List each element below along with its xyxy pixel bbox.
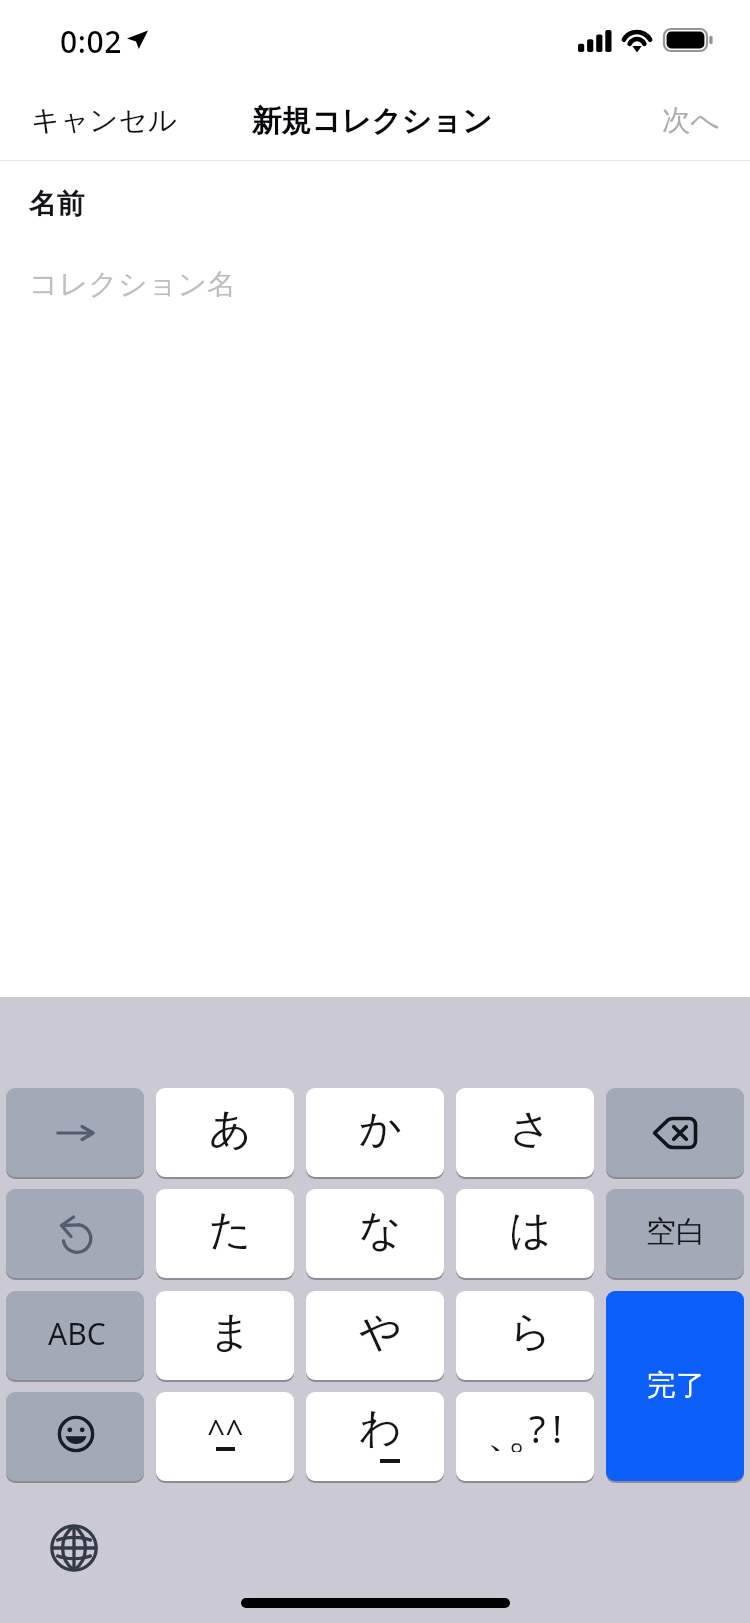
- button[interactable]: 完了: [606, 1291, 744, 1481]
- button[interactable]: か: [306, 1088, 444, 1177]
- button[interactable]: な: [306, 1189, 444, 1278]
- button[interactable]: た: [156, 1189, 294, 1278]
- staticText: コレクション名: [29, 266, 237, 303]
- staticText: ABC: [48, 1313, 106, 1354]
- button[interactable]: わ: [306, 1392, 444, 1481]
- button[interactable]: Next: [6, 1088, 144, 1177]
- staticText: ま: [209, 1306, 252, 1359]
- staticText: あ: [209, 1103, 252, 1156]
- staticText: わ: [359, 1402, 402, 1455]
- button[interactable]: キャンセル: [0, 91, 197, 157]
- button[interactable]: Delete: [606, 1088, 744, 1177]
- button[interactable]: ま: [156, 1291, 294, 1380]
- staticText: ?: [529, 1402, 546, 1450]
- button[interactable]: 空白: [606, 1189, 744, 1278]
- staticText: 、: [486, 1403, 534, 1451]
- button[interactable]: は: [456, 1189, 594, 1278]
- staticText: な: [359, 1204, 402, 1257]
- staticText: た: [209, 1204, 252, 1257]
- button[interactable]: ら: [456, 1291, 594, 1380]
- staticText: ^^: [207, 1410, 244, 1454]
- button[interactable]: あ: [156, 1088, 294, 1177]
- staticText: さ: [509, 1103, 552, 1156]
- button[interactable]: さ: [456, 1088, 594, 1177]
- staticText: 次へ: [662, 103, 720, 139]
- button[interactable]: 、: [456, 1392, 594, 1481]
- button[interactable]: や: [306, 1291, 444, 1380]
- button[interactable]: Undo: [6, 1189, 144, 1278]
- button[interactable]: Change keyboard: [44, 1518, 104, 1578]
- staticText: は: [509, 1204, 552, 1257]
- button[interactable]: 次へ: [642, 91, 750, 157]
- button[interactable]: Emoji: [6, 1392, 144, 1481]
- staticText: キャンセル: [31, 103, 177, 139]
- staticText: か: [359, 1103, 402, 1156]
- staticText: 完了: [647, 1367, 705, 1404]
- staticText: や: [359, 1306, 402, 1359]
- staticText: ら: [509, 1306, 552, 1359]
- button[interactable]: ABC: [6, 1291, 144, 1380]
- staticText: 名前: [29, 187, 84, 222]
- button[interactable]: ^^: [156, 1392, 294, 1481]
- staticText: 0:02: [60, 21, 123, 62]
- staticText: 新規コレクション: [252, 103, 493, 140]
- staticText: !: [552, 1402, 563, 1450]
- staticText: 。: [507, 1404, 553, 1452]
- staticText: 空白: [646, 1213, 706, 1251]
